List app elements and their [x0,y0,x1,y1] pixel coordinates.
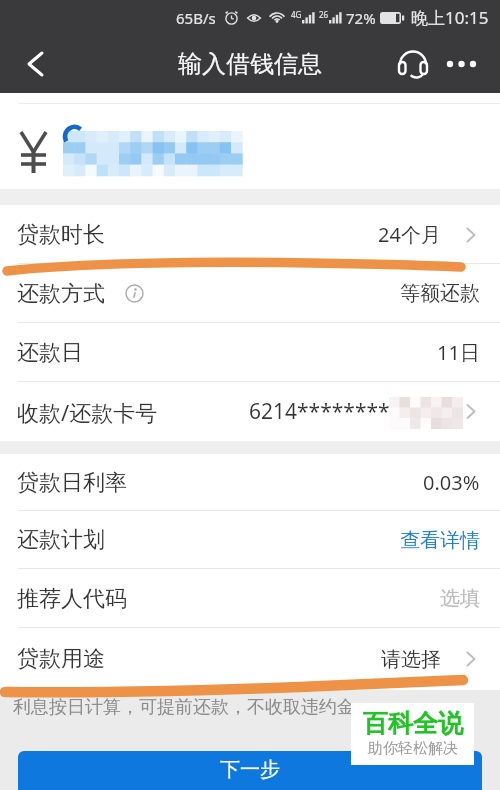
staticText: 推荐人代码 [17,585,127,613]
button[interactable]: 还款日 [0,323,500,382]
staticText: 还款日 [17,339,83,367]
staticText: 还款方式 [17,280,105,308]
staticText: 0.03% [423,469,480,496]
staticText: 贷款日利率 [17,469,127,497]
staticText: 6214******** [249,397,390,426]
staticText: 收款/还款卡号 [17,397,158,427]
staticText: 利息按日计算，可提前还款，不收取违约金 [13,696,355,719]
button[interactable] [396,47,430,81]
button[interactable] [445,49,481,79]
staticText: 65B/s [176,8,216,28]
staticText: 请选择 [381,647,441,672]
staticText: 4G [291,9,302,20]
staticText: 11日 [437,339,480,366]
button[interactable]: 贷款时长 [0,205,500,264]
staticText: 24个月 [378,221,441,248]
button[interactable]: 推荐人代码 [0,569,500,628]
staticText: 选填 [440,586,480,611]
staticText: 百科全说 [363,708,463,739]
staticText: 查看详情 [400,528,480,553]
button[interactable] [16,44,56,84]
button[interactable]: 还款方式 [0,264,500,323]
button[interactable] [0,93,500,189]
staticText: 72% [346,8,376,28]
staticText: 等额还款 [400,281,480,306]
button[interactable]: 收款/还款卡号 [0,382,500,441]
staticText: 贷款用途 [17,645,105,673]
button[interactable]: 下一步 [18,751,482,790]
button[interactable]: 还款计划 [0,511,500,569]
button[interactable]: 贷款日利率 [0,454,500,511]
staticText: 26 [319,9,329,20]
staticText: 贷款时长 [17,221,105,249]
staticText: 晚上10:15 [411,6,489,29]
staticText: 下一步 [220,757,280,782]
button[interactable]: 贷款用途 [0,628,500,690]
staticText: 输入借钱信息 [178,49,322,79]
staticText: 助你轻松解决 [368,739,458,758]
staticText: 还款计划 [17,526,105,554]
